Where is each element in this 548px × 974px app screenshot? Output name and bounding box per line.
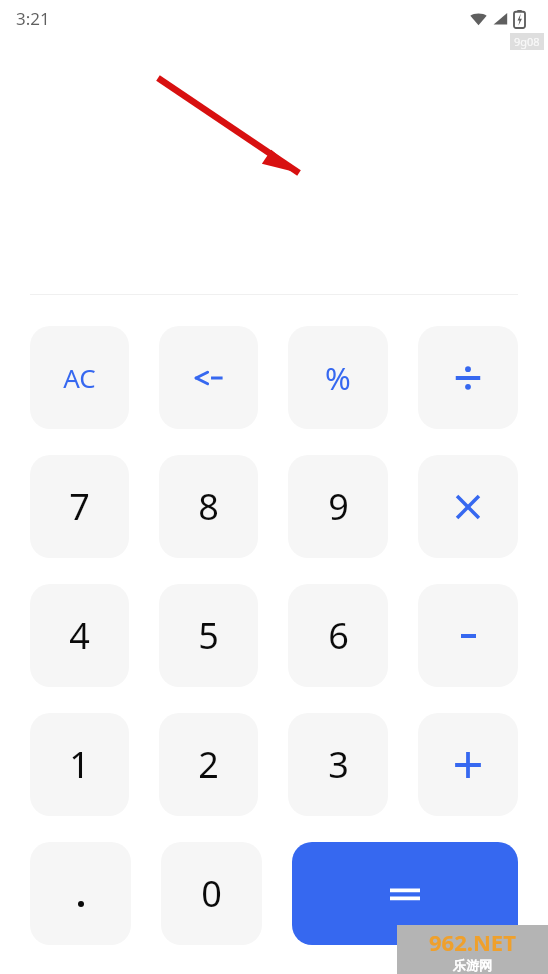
button[interactable]: 3 xyxy=(288,713,388,816)
staticText: 9 xyxy=(328,482,349,531)
button[interactable]: Multiply xyxy=(418,455,518,558)
staticText: 1 xyxy=(69,740,90,789)
button[interactable]: 7 xyxy=(30,455,129,558)
staticText: 7 xyxy=(69,482,90,531)
staticText: 6 xyxy=(328,611,349,660)
staticText: 4 xyxy=(69,611,90,660)
button[interactable]: % xyxy=(288,326,388,429)
staticText: 8 xyxy=(198,482,219,531)
staticText: 0 xyxy=(201,869,222,918)
staticText: 5 xyxy=(198,611,219,660)
staticText: 3:21 xyxy=(16,7,50,30)
button[interactable]: Minus xyxy=(418,584,518,687)
staticText: 9g08 xyxy=(514,34,540,49)
staticText: 2 xyxy=(198,740,219,789)
staticText: AC xyxy=(63,360,96,395)
staticText: 乐游网 xyxy=(453,957,492,973)
button[interactable]: 6 xyxy=(288,584,388,687)
staticText: % xyxy=(325,357,351,399)
button[interactable]: Decimal point xyxy=(30,842,131,945)
button[interactable]: 5 xyxy=(159,584,258,687)
button[interactable]: 2 xyxy=(159,713,258,816)
button[interactable]: AC xyxy=(30,326,129,429)
button[interactable]: 0 xyxy=(161,842,262,945)
staticText: 3 xyxy=(328,740,349,789)
button[interactable]: Backspace xyxy=(159,326,258,429)
button[interactable]: Divide xyxy=(418,326,518,429)
button[interactable]: 1 xyxy=(30,713,129,816)
button[interactable]: Plus xyxy=(418,713,518,816)
button[interactable]: Equals xyxy=(292,842,518,945)
button[interactable]: 9 xyxy=(288,455,388,558)
staticText: 962.NET xyxy=(429,927,516,957)
button[interactable]: 8 xyxy=(159,455,258,558)
button[interactable]: 4 xyxy=(30,584,129,687)
